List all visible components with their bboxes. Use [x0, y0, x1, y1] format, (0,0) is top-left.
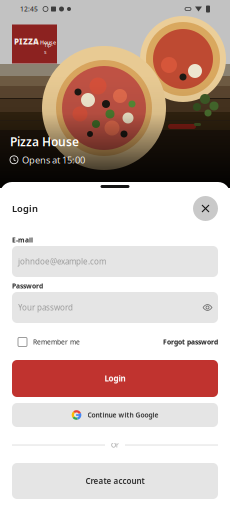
staticText: Pizza House — [10, 134, 79, 150]
staticText: Login — [12, 202, 38, 215]
staticText: Opens at 15:00 — [22, 154, 85, 166]
staticText: E-mail — [12, 236, 33, 244]
button[interactable]: Login — [12, 360, 218, 397]
staticText: Your password — [18, 302, 73, 313]
button[interactable]: Forgot password — [163, 337, 218, 347]
button[interactable]: Account — [164, 30, 186, 57]
staticText: Remember me — [33, 338, 80, 346]
staticText: Password — [12, 282, 43, 290]
button[interactable]: Create account — [12, 463, 218, 499]
staticText: PIZZA — [14, 36, 39, 47]
staticText: Tips — [44, 41, 53, 56]
staticText: Forgot password — [163, 338, 218, 346]
button[interactable]: Remember me — [12, 337, 80, 347]
button[interactable]: Continue with Google — [12, 403, 218, 427]
button[interactable]: Menu — [194, 32, 216, 56]
staticText: Or — [111, 441, 119, 449]
staticText: johndoe@example.com — [18, 256, 106, 267]
staticText: House — [40, 39, 56, 46]
staticText: 12:45 — [20, 5, 38, 13]
staticText: Continue with Google — [87, 411, 158, 419]
staticText: Create account — [85, 476, 144, 486]
button[interactable]: Close — [193, 196, 218, 221]
staticText: Login — [104, 373, 125, 384]
